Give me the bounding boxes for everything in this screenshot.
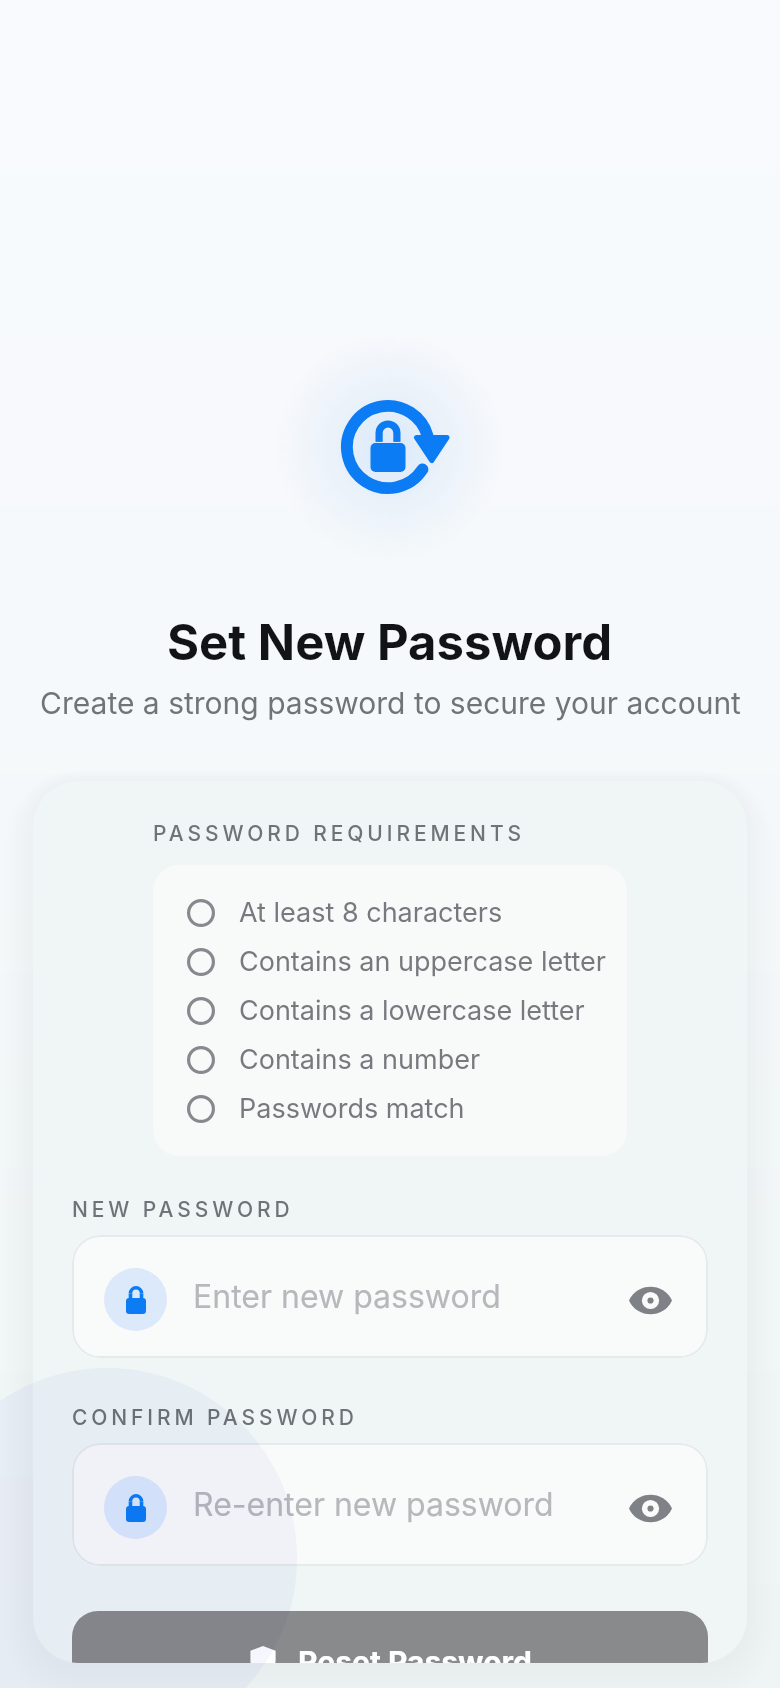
staticText: Create a strong password to secure your …: [40, 685, 741, 721]
staticText: NEW PASSWORD: [72, 1197, 294, 1222]
staticText: Passwords match: [239, 1092, 465, 1125]
button[interactable]: Show password: [614, 1469, 686, 1541]
staticText: PASSWORD REQUIREMENTS: [153, 821, 525, 846]
staticText: At least 8 characters: [239, 896, 503, 929]
staticText: Set New Password: [167, 613, 613, 672]
button[interactable]: Enter new password: [72, 1235, 708, 1358]
staticText: Re-enter new password: [193, 1485, 554, 1524]
staticText: Reset Password: [298, 1644, 532, 1663]
staticText: Contains an uppercase letter: [239, 945, 606, 978]
button[interactable]: Re-enter new password: [72, 1443, 708, 1566]
button[interactable]: Reset Password: [72, 1611, 708, 1663]
staticText: CONFIRM PASSWORD: [72, 1405, 358, 1430]
staticText: Enter new password: [193, 1277, 501, 1316]
button[interactable]: Show password: [614, 1261, 686, 1333]
staticText: Contains a number: [239, 1043, 481, 1076]
staticText: Contains a lowercase letter: [239, 994, 585, 1027]
